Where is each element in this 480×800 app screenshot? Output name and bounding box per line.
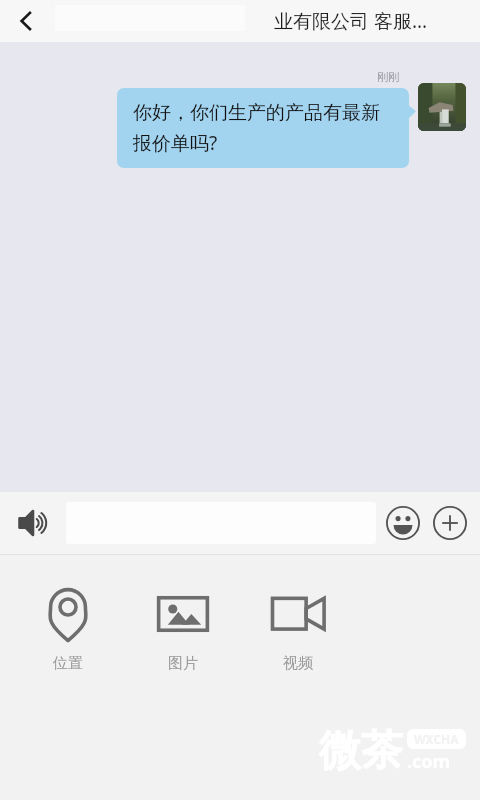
staticText: 视频 — [283, 654, 313, 673]
button[interactable]: 图片 — [125, 585, 240, 673]
button[interactable]: 位置 — [10, 585, 125, 673]
staticText: 位置 — [53, 654, 83, 673]
staticText: 刚刚 — [377, 70, 399, 84]
button[interactable]: 视频 — [240, 585, 355, 673]
staticText: 图片 — [168, 654, 198, 673]
button[interactable]: Back — [0, 0, 52, 42]
button[interactable]: Emoji — [383, 503, 423, 543]
button[interactable]: 你好，你们生产的产品有最新报价单吗? — [117, 88, 409, 168]
button[interactable]: Contact avatar — [418, 83, 466, 131]
staticText: 你好，你们生产的产品有最新报价单吗? — [133, 101, 393, 155]
staticText: 微茶 — [319, 725, 403, 778]
button[interactable]: Voice input — [9, 499, 57, 547]
staticText: .com — [407, 749, 451, 774]
staticText: WXCHA — [414, 731, 459, 747]
staticText: 业有限公司 客服... — [274, 8, 428, 34]
button[interactable]: More actions — [430, 503, 470, 543]
